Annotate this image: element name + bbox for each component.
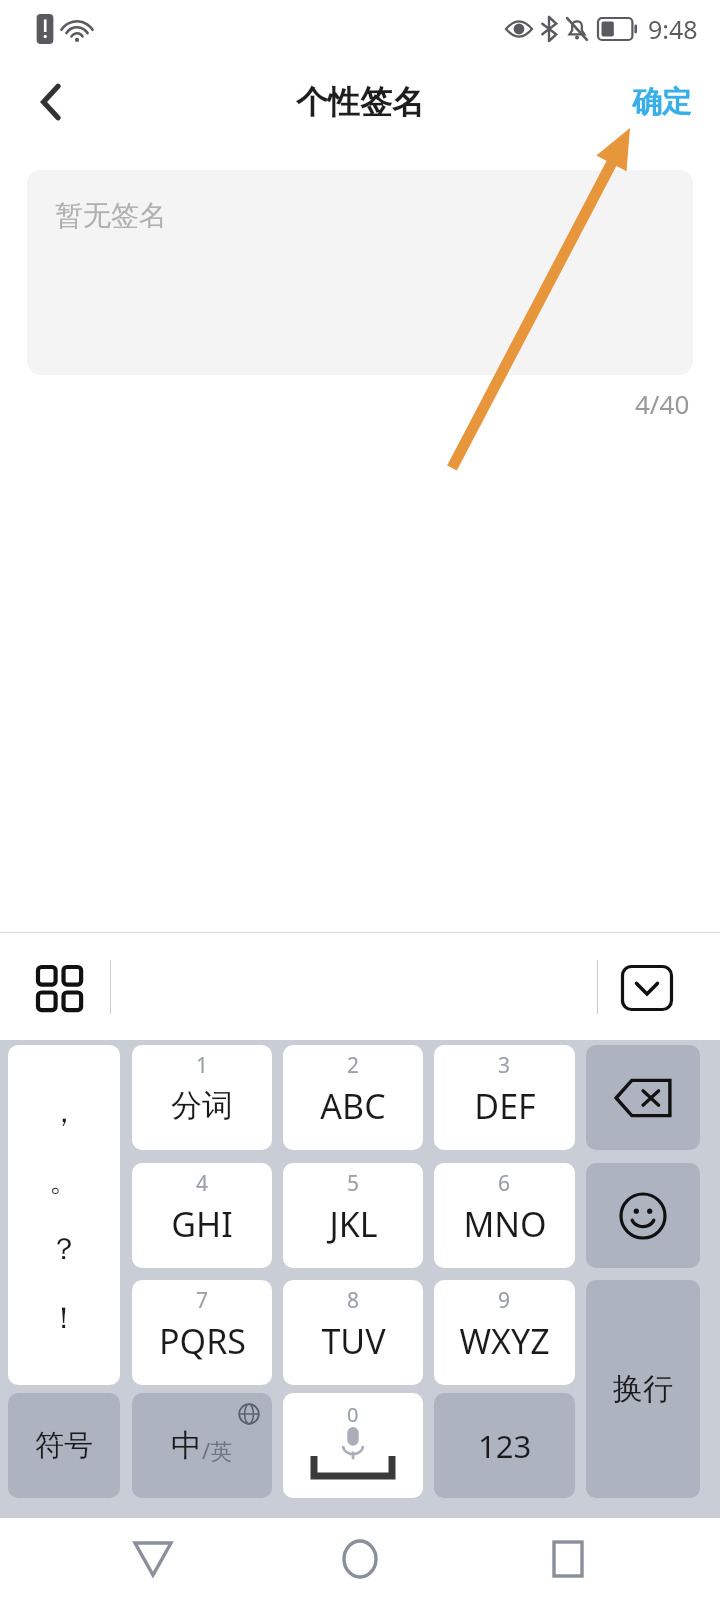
staticText: TUV	[321, 1318, 386, 1364]
button[interactable]: 6	[434, 1163, 575, 1268]
other: Backspace	[586, 1045, 700, 1150]
button[interactable]: 1	[132, 1045, 272, 1150]
staticText: ？	[49, 1230, 79, 1268]
staticText: 7	[196, 1286, 209, 1315]
staticText: JKL	[329, 1201, 378, 1247]
staticText: 4/40	[635, 386, 690, 421]
staticText: 确定	[632, 83, 692, 121]
button[interactable]: Back	[14, 65, 88, 139]
staticText: 6	[498, 1169, 511, 1198]
button[interactable]: 8	[283, 1280, 423, 1385]
button[interactable]: 2	[283, 1045, 423, 1150]
button[interactable]: Backspace	[586, 1045, 700, 1150]
button[interactable]: Recents	[513, 1523, 623, 1595]
button[interactable]: Keyboard menu	[20, 954, 100, 1024]
staticText: 个性签名	[296, 82, 424, 122]
staticText: 换行	[613, 1370, 673, 1408]
staticText: PQRS	[159, 1318, 246, 1364]
staticText: 。	[49, 1162, 79, 1200]
button[interactable]: Hide keyboard	[608, 952, 686, 1024]
staticText: GHI	[171, 1201, 233, 1247]
button[interactable]: 符号	[8, 1393, 120, 1498]
staticText: 5	[347, 1169, 360, 1198]
button[interactable]: 确定	[612, 69, 712, 135]
staticText: 中	[171, 1426, 202, 1465]
staticText: 2	[347, 1051, 360, 1080]
staticText: 8	[347, 1286, 360, 1315]
staticText: 符号	[35, 1427, 93, 1464]
staticText: ，	[49, 1093, 79, 1131]
other: Space	[283, 1393, 423, 1498]
staticText: 9:48	[648, 12, 698, 46]
staticText: 暂无签名	[55, 198, 167, 233]
button[interactable]: Space	[283, 1393, 423, 1498]
button[interactable]: 暂无签名	[27, 170, 693, 375]
staticText: 分词	[171, 1086, 233, 1125]
button[interactable]: 换行	[586, 1280, 700, 1498]
staticText: ABC	[320, 1083, 386, 1129]
button[interactable]: ，	[8, 1045, 120, 1385]
button[interactable]: 7	[132, 1280, 272, 1385]
staticText: 4	[196, 1169, 209, 1198]
button[interactable]: 5	[283, 1163, 423, 1268]
button[interactable]: 3	[434, 1045, 575, 1150]
button[interactable]: 4	[132, 1163, 272, 1268]
button[interactable]: Home	[305, 1523, 415, 1595]
staticText: ！	[49, 1299, 79, 1337]
other: Emoji	[586, 1163, 700, 1268]
staticText: 3	[498, 1051, 511, 1080]
staticText: 0	[347, 1401, 359, 1428]
button[interactable]: 123	[434, 1393, 575, 1498]
staticText: MNO	[463, 1201, 547, 1247]
button[interactable]: 中	[132, 1393, 272, 1498]
staticText: 1	[196, 1051, 209, 1080]
staticText: WXYZ	[459, 1318, 550, 1364]
button[interactable]: 9	[434, 1280, 575, 1385]
button[interactable]: Back	[98, 1523, 208, 1595]
staticText: 123	[478, 1425, 532, 1467]
button[interactable]: Emoji	[586, 1163, 700, 1268]
staticText: 9	[498, 1286, 511, 1315]
staticText: /英	[202, 1435, 233, 1465]
staticText: DEF	[474, 1083, 536, 1129]
